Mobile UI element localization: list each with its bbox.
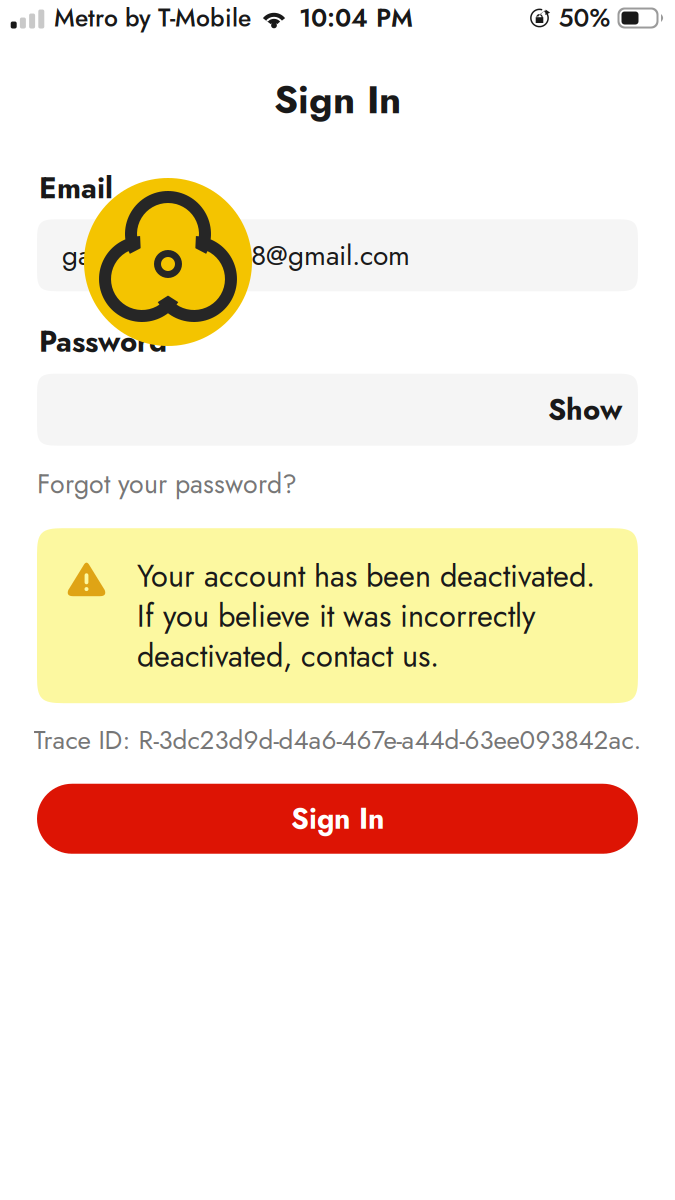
- button[interactable]: Show: [37, 374, 638, 446]
- button[interactable]: Forgot your password?: [0, 446, 297, 511]
- staticText: Metro by T-Mobile: [54, 0, 251, 36]
- staticText: Your account has been deactivated.: [137, 554, 595, 598]
- button[interactable]: Sign In: [37, 784, 638, 854]
- staticText: Trace ID: R-3dc23d9d-d4a6-467e-a44d-63ee…: [33, 721, 641, 759]
- staticText: deactivated, contact us.: [137, 634, 439, 678]
- staticText: 50%: [558, 0, 610, 36]
- staticText: ga 8@gmail.com: [62, 235, 410, 275]
- staticText: Show: [548, 388, 622, 431]
- staticText: 10:04 PM: [299, 0, 413, 36]
- staticText: If you believe it was incorrectly: [137, 594, 535, 638]
- staticText: Forgot your password?: [37, 465, 297, 503]
- staticText: Password: [39, 320, 167, 363]
- staticText: Sign In: [291, 798, 384, 839]
- staticText: Sign In: [274, 72, 401, 128]
- staticText: Email: [39, 167, 113, 209]
